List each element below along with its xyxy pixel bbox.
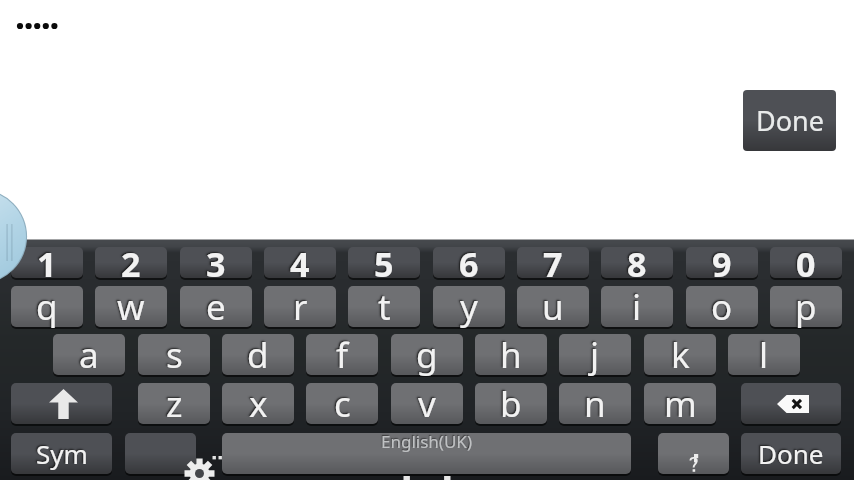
staticText: k: [671, 331, 690, 379]
staticText: Done: [756, 102, 824, 139]
button[interactable]: [644, 383, 716, 424]
button[interactable]: [95, 247, 167, 278]
button[interactable]: [433, 247, 505, 278]
button[interactable]: [601, 286, 673, 327]
button[interactable]: [475, 334, 547, 375]
button[interactable]: [686, 247, 758, 278]
button[interactable]: [11, 433, 112, 474]
staticText: i: [632, 283, 642, 331]
button[interactable]: [264, 247, 336, 278]
button[interactable]: [222, 334, 294, 375]
staticText: p: [795, 283, 817, 331]
button[interactable]: [11, 286, 83, 327]
staticText: z: [166, 380, 183, 428]
staticText: m: [664, 380, 697, 428]
button[interactable]: [686, 286, 758, 327]
button[interactable]: [306, 334, 378, 375]
staticText: f: [336, 331, 349, 379]
staticText: t: [378, 283, 391, 331]
button[interactable]: [517, 247, 589, 278]
button[interactable]: [53, 334, 125, 375]
staticText: r: [293, 283, 308, 331]
staticText: 1: [37, 241, 57, 287]
button[interactable]: Shift: [11, 383, 112, 424]
staticText: 9: [712, 241, 732, 287]
button[interactable]: [391, 383, 463, 424]
staticText: y: [460, 283, 478, 331]
staticText: n: [584, 380, 606, 428]
staticText: e: [206, 283, 226, 331]
button[interactable]: Space: [222, 433, 631, 474]
staticText: c: [334, 380, 351, 428]
button[interactable]: [644, 334, 716, 375]
button[interactable]: [180, 286, 252, 327]
staticText: 6: [459, 241, 479, 287]
button[interactable]: [770, 286, 842, 327]
button[interactable]: [601, 247, 673, 278]
button[interactable]: [180, 247, 252, 278]
staticText: h: [500, 331, 522, 379]
button[interactable]: [728, 334, 800, 375]
button[interactable]: [743, 90, 836, 151]
button[interactable]: [517, 286, 589, 327]
staticText: Done: [758, 436, 824, 471]
staticText: Sym: [36, 436, 88, 471]
staticText: English(UK): [381, 430, 472, 453]
staticText: 3: [206, 241, 226, 287]
button[interactable]: [306, 383, 378, 424]
button[interactable]: [348, 247, 420, 278]
button[interactable]: [222, 383, 294, 424]
staticText: 0: [796, 241, 816, 287]
button[interactable]: Settings: [125, 433, 196, 474]
button[interactable]: [391, 334, 463, 375]
staticText: w: [117, 283, 145, 331]
staticText: l: [759, 331, 769, 379]
button[interactable]: [95, 286, 167, 327]
button[interactable]: [559, 383, 631, 424]
other: Resize keyboard handle: [0, 0, 854, 480]
button[interactable]: [138, 334, 210, 375]
staticText: v: [418, 380, 436, 428]
staticText: 4: [290, 241, 310, 287]
staticText: d: [247, 331, 269, 379]
staticText: 5: [374, 241, 394, 287]
button[interactable]: [348, 286, 420, 327]
button[interactable]: [559, 334, 631, 375]
button[interactable]: [770, 247, 842, 278]
button[interactable]: [138, 383, 210, 424]
staticText: g: [416, 331, 438, 379]
button[interactable]: Period and symbols: [658, 433, 729, 474]
staticText: x: [249, 380, 268, 428]
button[interactable]: [11, 247, 83, 278]
staticText: j: [590, 331, 600, 379]
staticText: o: [711, 283, 733, 331]
button[interactable]: [264, 286, 336, 327]
staticText: u: [542, 283, 564, 331]
button[interactable]: Backspace: [741, 383, 841, 424]
button[interactable]: [475, 383, 547, 424]
staticText: 7: [543, 241, 563, 287]
staticText: s: [166, 331, 183, 379]
staticText: q: [36, 283, 58, 331]
staticText: a: [79, 331, 99, 379]
staticText: 2: [121, 241, 141, 287]
staticText: b: [500, 380, 522, 428]
staticText: 8: [627, 241, 647, 287]
button[interactable]: [741, 433, 841, 474]
button[interactable]: [433, 286, 505, 327]
